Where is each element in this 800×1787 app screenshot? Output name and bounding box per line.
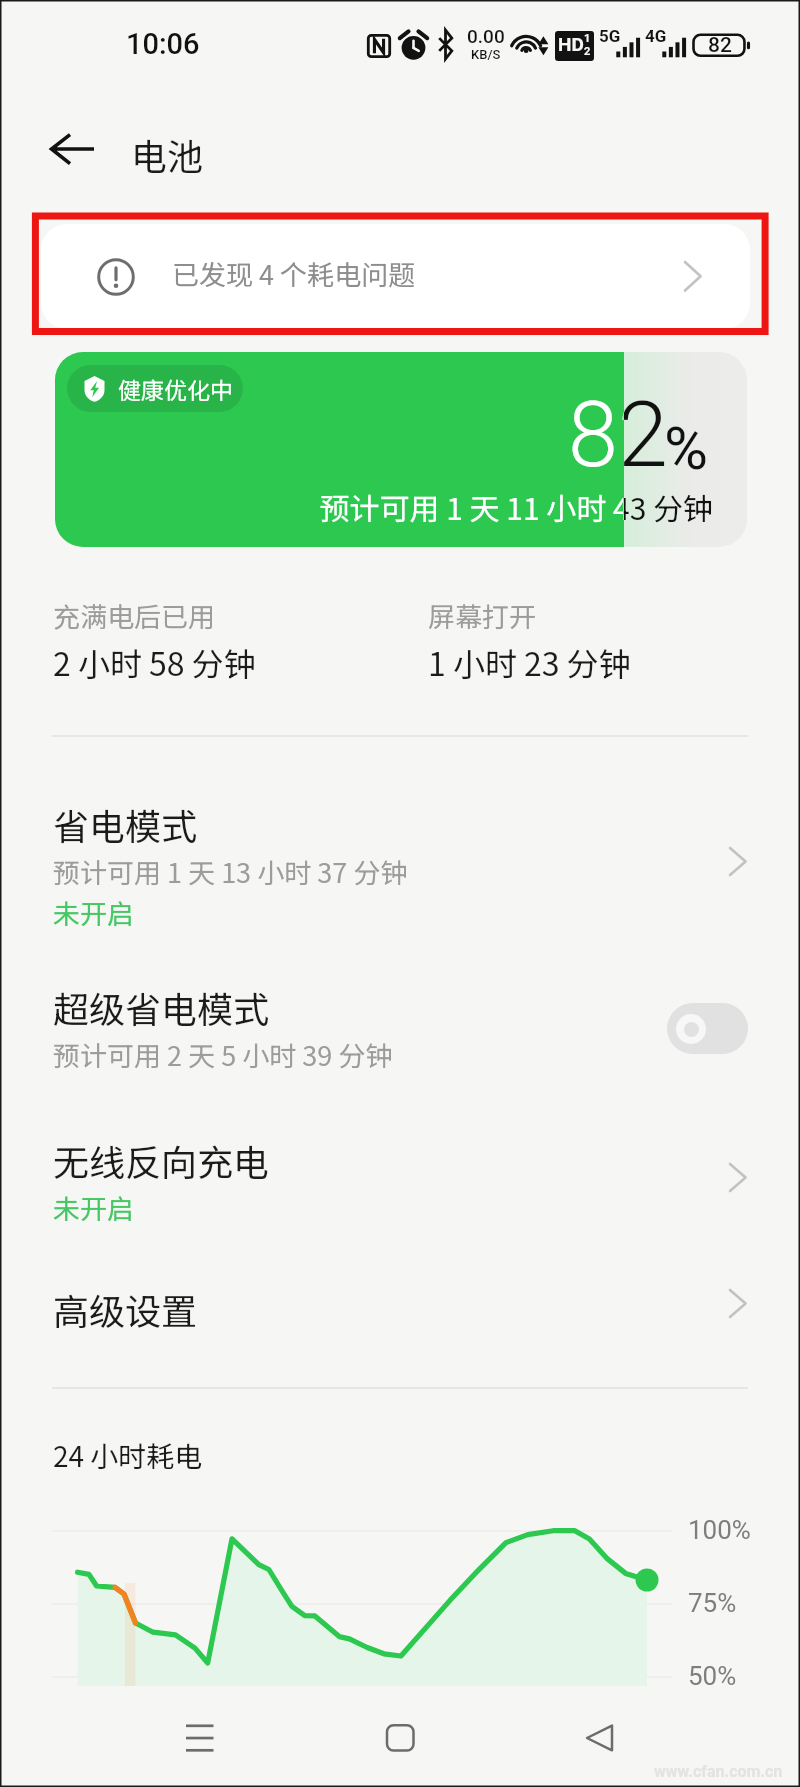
button[interactable]: Recent apps	[163, 1705, 237, 1773]
staticText: 100%	[688, 1515, 751, 1545]
button[interactable]: 已发现 4 个耗电问题	[41, 224, 750, 329]
staticText: 预计可用 1 天 11 小时 43 分钟	[55, 485, 713, 528]
staticText: 充满电后已用	[53, 596, 215, 635]
staticText: 屏幕打开	[428, 596, 536, 635]
button[interactable]: Toggle super power saving	[667, 1003, 748, 1054]
button[interactable]: 无线反向充电	[0, 1108, 800, 1256]
staticText: 2 小时 58 分钟	[53, 639, 256, 685]
button[interactable]: 健康优化中	[55, 352, 747, 547]
staticText: 省电模式	[53, 798, 198, 850]
staticText: 10:06	[126, 27, 200, 61]
staticText: 预计可用 1 天 13 小时 37 分钟	[53, 852, 408, 891]
staticText: 未开启	[53, 893, 134, 932]
staticText: 预计可用 2 天 5 小时 39 分钟	[53, 1035, 393, 1074]
staticText: 已发现 4 个耗电问题	[172, 254, 416, 293]
staticText: %	[664, 413, 708, 483]
staticText: %	[664, 413, 708, 483]
button[interactable]: 省电模式	[0, 770, 800, 960]
staticText: 82	[568, 383, 668, 488]
staticText: KB/S	[471, 47, 501, 62]
staticText: 电池	[131, 128, 204, 180]
staticText: 75%	[688, 1588, 737, 1618]
button[interactable]: Home	[364, 1705, 438, 1773]
staticText: 82	[568, 383, 668, 488]
button[interactable]: Back	[563, 1705, 637, 1773]
staticText: 2	[584, 45, 591, 58]
staticText: HD	[558, 33, 584, 55]
staticText: 50%	[688, 1661, 737, 1691]
staticText: 4G	[645, 26, 667, 46]
staticText: 1	[584, 32, 591, 45]
staticText: www.cfan.com.cn	[654, 1762, 783, 1781]
staticText: 超级省电模式	[53, 981, 270, 1033]
staticText: 未开启	[53, 1188, 134, 1227]
staticText: 5G	[599, 26, 621, 46]
button[interactable]: Back	[30, 115, 114, 183]
staticText: 高级设置	[53, 1283, 198, 1335]
staticText: 健康优化中	[118, 372, 233, 405]
staticText: 预计可用 1 天 11 小时 43 分钟	[55, 485, 713, 528]
button[interactable]: 高级设置	[0, 1256, 800, 1386]
button[interactable]: 超级省电模式	[0, 960, 800, 1110]
staticText: 82	[708, 33, 732, 58]
staticText: 24 小时耗电	[53, 1435, 203, 1476]
staticText: 0.00	[467, 25, 505, 47]
staticText: 无线反向充电	[53, 1134, 270, 1186]
staticText: 1 小时 23 分钟	[428, 639, 631, 685]
